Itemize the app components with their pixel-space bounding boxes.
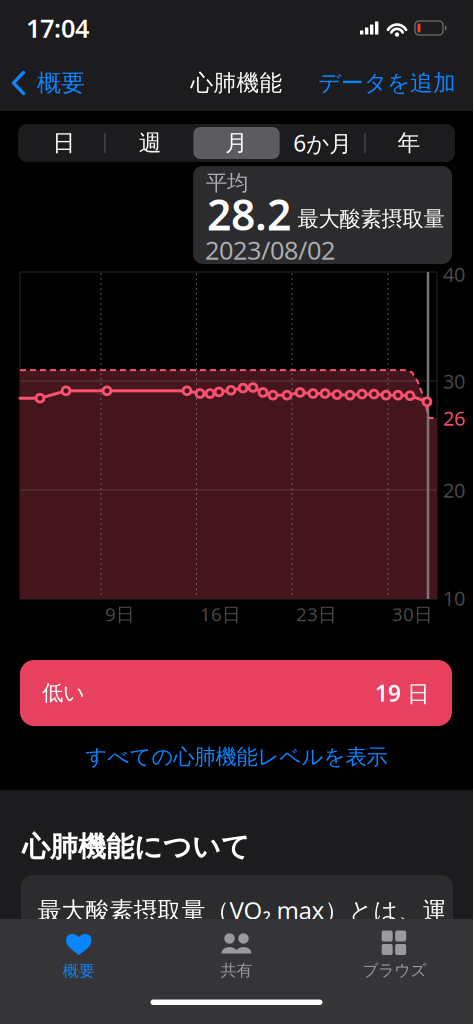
staticText: 年 <box>397 129 420 157</box>
staticText: 日 <box>53 129 76 157</box>
button[interactable]: 共有 <box>158 930 315 980</box>
staticText: 概要 <box>63 961 95 981</box>
button[interactable]: 概要 <box>11 59 97 107</box>
staticText: 10 <box>443 585 465 611</box>
staticText: すべての心肺機能レベルを表示 <box>85 744 387 770</box>
staticText: 19 日 <box>375 678 430 708</box>
staticText: 2023/08/02 <box>205 233 335 267</box>
staticText: 17:04 <box>26 11 89 45</box>
staticText: 月 <box>225 129 248 157</box>
button[interactable]: 日 <box>21 127 107 159</box>
staticText: 最大酸素摂取量（VO₂ max）とは、運 <box>37 894 446 926</box>
staticText: 共有 <box>220 960 252 980</box>
button[interactable]: 低い <box>20 660 452 726</box>
staticText: 20 <box>443 477 465 503</box>
button[interactable]: 年 <box>366 127 452 159</box>
staticText: 9日 <box>105 602 135 626</box>
button[interactable]: データを追加 <box>318 60 456 106</box>
staticText: 30日 <box>392 602 433 626</box>
staticText: 心肺機能について <box>22 830 250 864</box>
staticText: 最大酸素摂取量 <box>297 206 444 232</box>
button[interactable]: 月 <box>193 127 280 159</box>
staticText: 30 <box>443 368 465 394</box>
button[interactable]: 概要 <box>0 930 158 981</box>
staticText: 心肺機能 <box>190 69 282 97</box>
staticText: 23日 <box>296 602 337 626</box>
staticText: データを追加 <box>318 69 456 97</box>
staticText: ブラウズ <box>362 960 426 980</box>
staticText: 平均 <box>206 170 248 196</box>
button[interactable]: 6か月 <box>280 127 366 159</box>
staticText: 16日 <box>200 602 241 626</box>
staticText: 26 <box>443 405 465 431</box>
staticText: 概要 <box>37 68 85 98</box>
button[interactable]: ブラウズ <box>315 930 473 980</box>
button[interactable]: すべての心肺機能レベルを表示 <box>77 738 395 776</box>
staticText: 低い <box>42 680 85 706</box>
staticText: 40 <box>443 261 465 287</box>
button[interactable]: 週 <box>107 127 193 159</box>
staticText: 6か月 <box>293 128 352 158</box>
staticText: 週 <box>139 129 162 157</box>
staticText: 28.2 <box>207 186 291 242</box>
